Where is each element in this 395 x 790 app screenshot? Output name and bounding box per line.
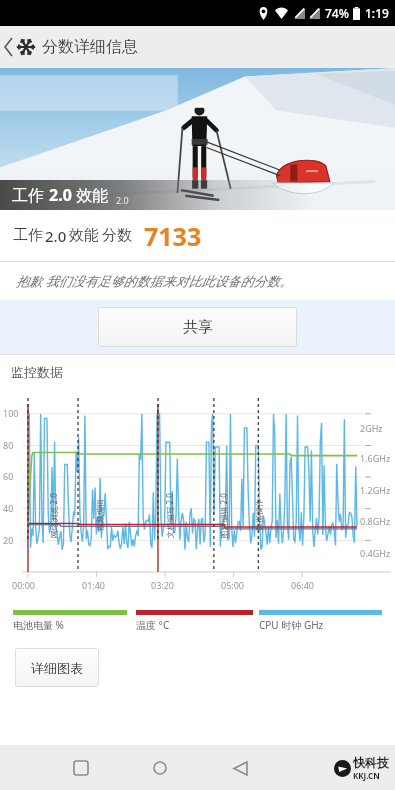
staticText: KKJ.CN (353, 770, 380, 781)
staticText: 2.0 (45, 226, 67, 246)
staticText: 100 (3, 407, 19, 419)
staticText: 抱歉 我们没有足够的数据来对比此设备的分数。 (16, 272, 293, 290)
staticText: 0.4GHz (360, 547, 391, 559)
staticText: 20 (3, 534, 14, 546)
staticText: 文档编写 2.0 (163, 492, 174, 538)
staticText: 7133 (144, 219, 202, 253)
button[interactable]: 共享 (98, 307, 297, 347)
staticText: 06:40 (291, 579, 315, 591)
staticText: 监控数据 (11, 364, 63, 380)
button[interactable]: Back (0, 26, 146, 68)
staticText: 电池电量 % (13, 618, 64, 632)
staticText: 60 (3, 470, 14, 482)
staticText: 1.2GHz (360, 484, 391, 496)
staticText: 工作 (12, 184, 49, 206)
staticText: 详细图表 (31, 660, 83, 676)
staticText: 05:00 (221, 579, 245, 591)
staticText: 2.0 (116, 194, 129, 206)
staticText: 图片编辑 2.0 (217, 492, 228, 538)
staticText: 1.6GHz (360, 452, 391, 464)
staticText: 74% (325, 5, 349, 21)
staticText: 00:00 (12, 579, 36, 591)
button[interactable]: Home (141, 749, 179, 787)
staticText: 分数详细信息 (42, 37, 138, 57)
staticText: 2.0 (49, 184, 72, 206)
staticText: 工作 (13, 226, 43, 245)
staticText: 快科技 (353, 755, 389, 770)
staticText: 共享 (183, 318, 213, 337)
staticText: 分数 (102, 226, 132, 245)
staticText: 40 (3, 502, 14, 514)
staticText: 01:40 (82, 579, 106, 591)
staticText: 数据操作 (254, 499, 264, 531)
button[interactable]: Back (221, 749, 259, 787)
staticText: 效能 (69, 226, 99, 245)
button[interactable]: 详细图表 (15, 648, 99, 687)
button[interactable]: Recents (62, 749, 100, 787)
other: Back (4, 38, 14, 56)
staticText: 2GHz (360, 422, 383, 434)
staticText: 网络浏览 2.0 (47, 492, 58, 538)
staticText: 效能 (72, 184, 109, 206)
staticText: 80 (3, 439, 14, 451)
staticText: 温度 °C (136, 618, 170, 632)
staticText: 03:20 (151, 579, 175, 591)
staticText: CPU 时钟 GHz (259, 618, 324, 632)
staticText: 视频编辑 (95, 499, 105, 531)
staticText: 0.8GHz (360, 515, 391, 527)
staticText: 1:19 (365, 5, 389, 21)
